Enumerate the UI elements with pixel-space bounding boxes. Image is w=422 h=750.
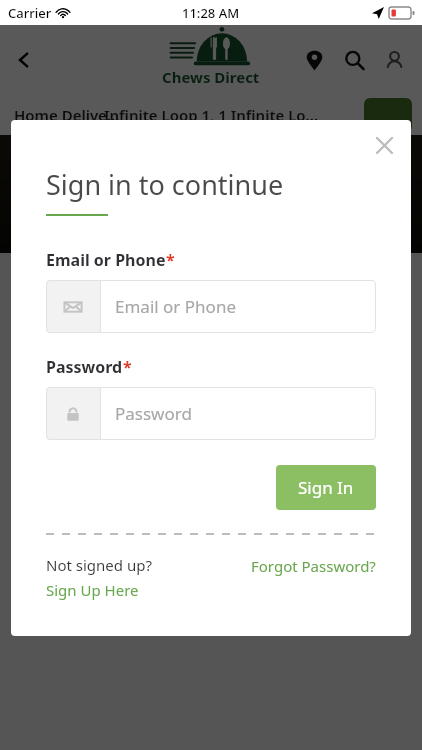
staticText: - <box>150 311 155 329</box>
button[interactable]: Account <box>378 44 410 76</box>
button[interactable]: Not signed up? <box>46 555 251 600</box>
staticText: * <box>123 356 132 378</box>
staticText: Sign Up Here <box>46 580 139 600</box>
staticText: Sign in to continue <box>46 166 284 203</box>
staticText: Email or Phone <box>115 295 236 318</box>
button[interactable]: Search <box>338 44 370 76</box>
button[interactable]: Back <box>6 42 42 78</box>
button[interactable]: Close <box>369 130 399 160</box>
staticText: Sign In <box>298 476 354 499</box>
staticText: Not signed up? <box>46 555 152 575</box>
staticText: * <box>166 249 175 271</box>
button[interactable]: Refresh <box>364 98 412 132</box>
staticText: Carrier <box>8 4 52 22</box>
staticText: Email or Phone <box>46 249 166 271</box>
button[interactable]: Sign In <box>276 465 376 510</box>
button[interactable]: Location <box>298 44 330 76</box>
staticText: Chews Direct <box>162 67 260 87</box>
staticText: Password <box>46 356 123 378</box>
staticText: Forgot Password? <box>251 556 376 576</box>
button[interactable]: Email or Phone <box>46 280 376 333</box>
staticText: 11:28 AM <box>182 4 240 22</box>
staticText: Password <box>115 402 192 425</box>
staticText: Infinite Loop 1, 1 Infinite Lo... <box>104 105 319 125</box>
staticText: Home Delive... <box>14 105 120 125</box>
button[interactable]: Password <box>46 387 376 440</box>
staticText: Brothers' Barbeque <box>150 279 302 301</box>
button[interactable]: Forgot Password? <box>251 555 376 576</box>
